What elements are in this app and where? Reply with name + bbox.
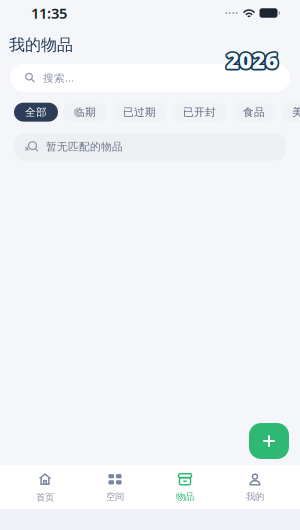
button[interactable]: 空间 <box>80 465 150 509</box>
staticText: 我的 <box>246 491 264 502</box>
button[interactable]: 全部 <box>14 103 58 122</box>
staticText: 2026 <box>225 46 277 76</box>
staticText: 全部 <box>25 106 47 119</box>
staticText: 2026 <box>227 44 279 74</box>
button[interactable]: 食品 <box>232 103 276 122</box>
staticText: 临期 <box>74 106 96 119</box>
staticText: 食品 <box>243 106 265 119</box>
staticText: 已过期 <box>123 106 156 119</box>
staticText: 11:35 <box>31 3 67 23</box>
staticText: 我的物品 <box>9 35 73 55</box>
button[interactable]: 首页 <box>10 465 80 509</box>
staticText: 2026 <box>226 45 278 75</box>
button[interactable]: 搜索... <box>10 64 290 92</box>
button[interactable]: 物品 <box>150 465 220 509</box>
button[interactable]: 添加物品 <box>249 423 289 459</box>
staticText: 物品 <box>176 491 194 502</box>
staticText: 2026 <box>224 45 276 75</box>
staticText: 2026 <box>227 46 279 76</box>
staticText: 暂无匹配的物品 <box>46 140 123 153</box>
button[interactable]: 我的 <box>220 465 290 509</box>
button[interactable]: 已过期 <box>112 103 167 122</box>
button[interactable]: 美 <box>281 103 300 122</box>
staticText: 2026 <box>228 45 280 75</box>
staticText: 2026 <box>226 43 278 73</box>
staticText: 首页 <box>36 492 54 503</box>
button[interactable]: 临期 <box>63 103 107 122</box>
staticText: 2026 <box>225 44 277 74</box>
staticText: 已开封 <box>183 106 216 119</box>
staticText: 搜索... <box>43 71 74 85</box>
button[interactable]: 已开封 <box>172 103 227 122</box>
staticText: 2026 <box>226 47 278 77</box>
staticText: 美 <box>292 106 300 119</box>
staticText: 空间 <box>106 491 124 502</box>
